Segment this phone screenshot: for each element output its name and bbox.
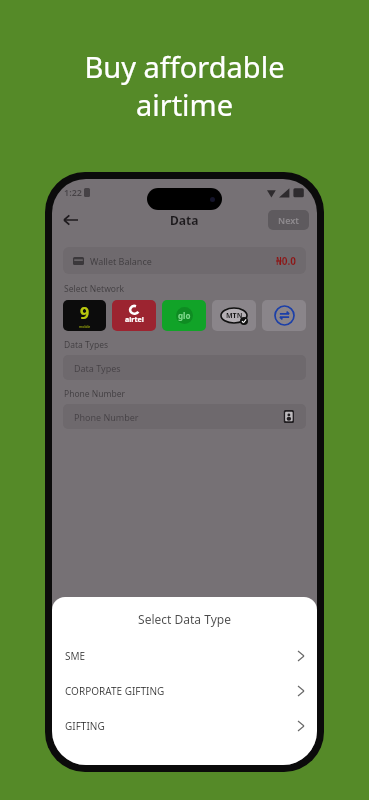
- staticText: 9: [80, 302, 90, 324]
- staticText: Phone Number: [64, 388, 125, 400]
- button[interactable]: Network: [63, 300, 106, 331]
- button[interactable]: Wallet Balance: [63, 247, 306, 274]
- button[interactable]: Network: [162, 300, 206, 331]
- staticText: CORPORATE GIFTING: [65, 684, 165, 698]
- staticText: Data Types: [64, 339, 109, 351]
- staticText: Select Data Type: [52, 611, 317, 627]
- staticText: Next: [278, 214, 299, 226]
- button[interactable]: Data Types: [63, 355, 306, 380]
- staticText: ₦0.0: [276, 254, 296, 268]
- staticText: SME: [65, 649, 86, 663]
- button[interactable]: SME: [52, 647, 317, 665]
- staticText: Data: [170, 212, 199, 228]
- staticText: Wallet Balance: [90, 255, 152, 267]
- staticText: Phone Number: [74, 411, 139, 423]
- button[interactable]: Network: [112, 300, 156, 331]
- button[interactable]: Back: [58, 207, 84, 233]
- staticText: MTN: [226, 311, 243, 321]
- button[interactable]: Network: [262, 300, 306, 331]
- button[interactable]: Next: [268, 210, 309, 230]
- staticText: 1:22: [64, 186, 82, 198]
- other: Contacts: [282, 410, 295, 423]
- staticText: Buy affordable airtime: [84, 47, 285, 124]
- button[interactable]: GIFTING: [52, 717, 317, 735]
- button[interactable]: Network: [212, 300, 256, 331]
- staticText: Select Network: [64, 283, 125, 295]
- staticText: GIFTING: [65, 719, 105, 733]
- staticText: glo: [178, 310, 191, 321]
- button[interactable]: CORPORATE GIFTING: [52, 682, 317, 700]
- staticText: airtel: [125, 315, 144, 325]
- staticText: Data Types: [74, 362, 121, 374]
- staticText: mobile: [79, 324, 91, 329]
- button[interactable]: Phone Number: [63, 404, 306, 429]
